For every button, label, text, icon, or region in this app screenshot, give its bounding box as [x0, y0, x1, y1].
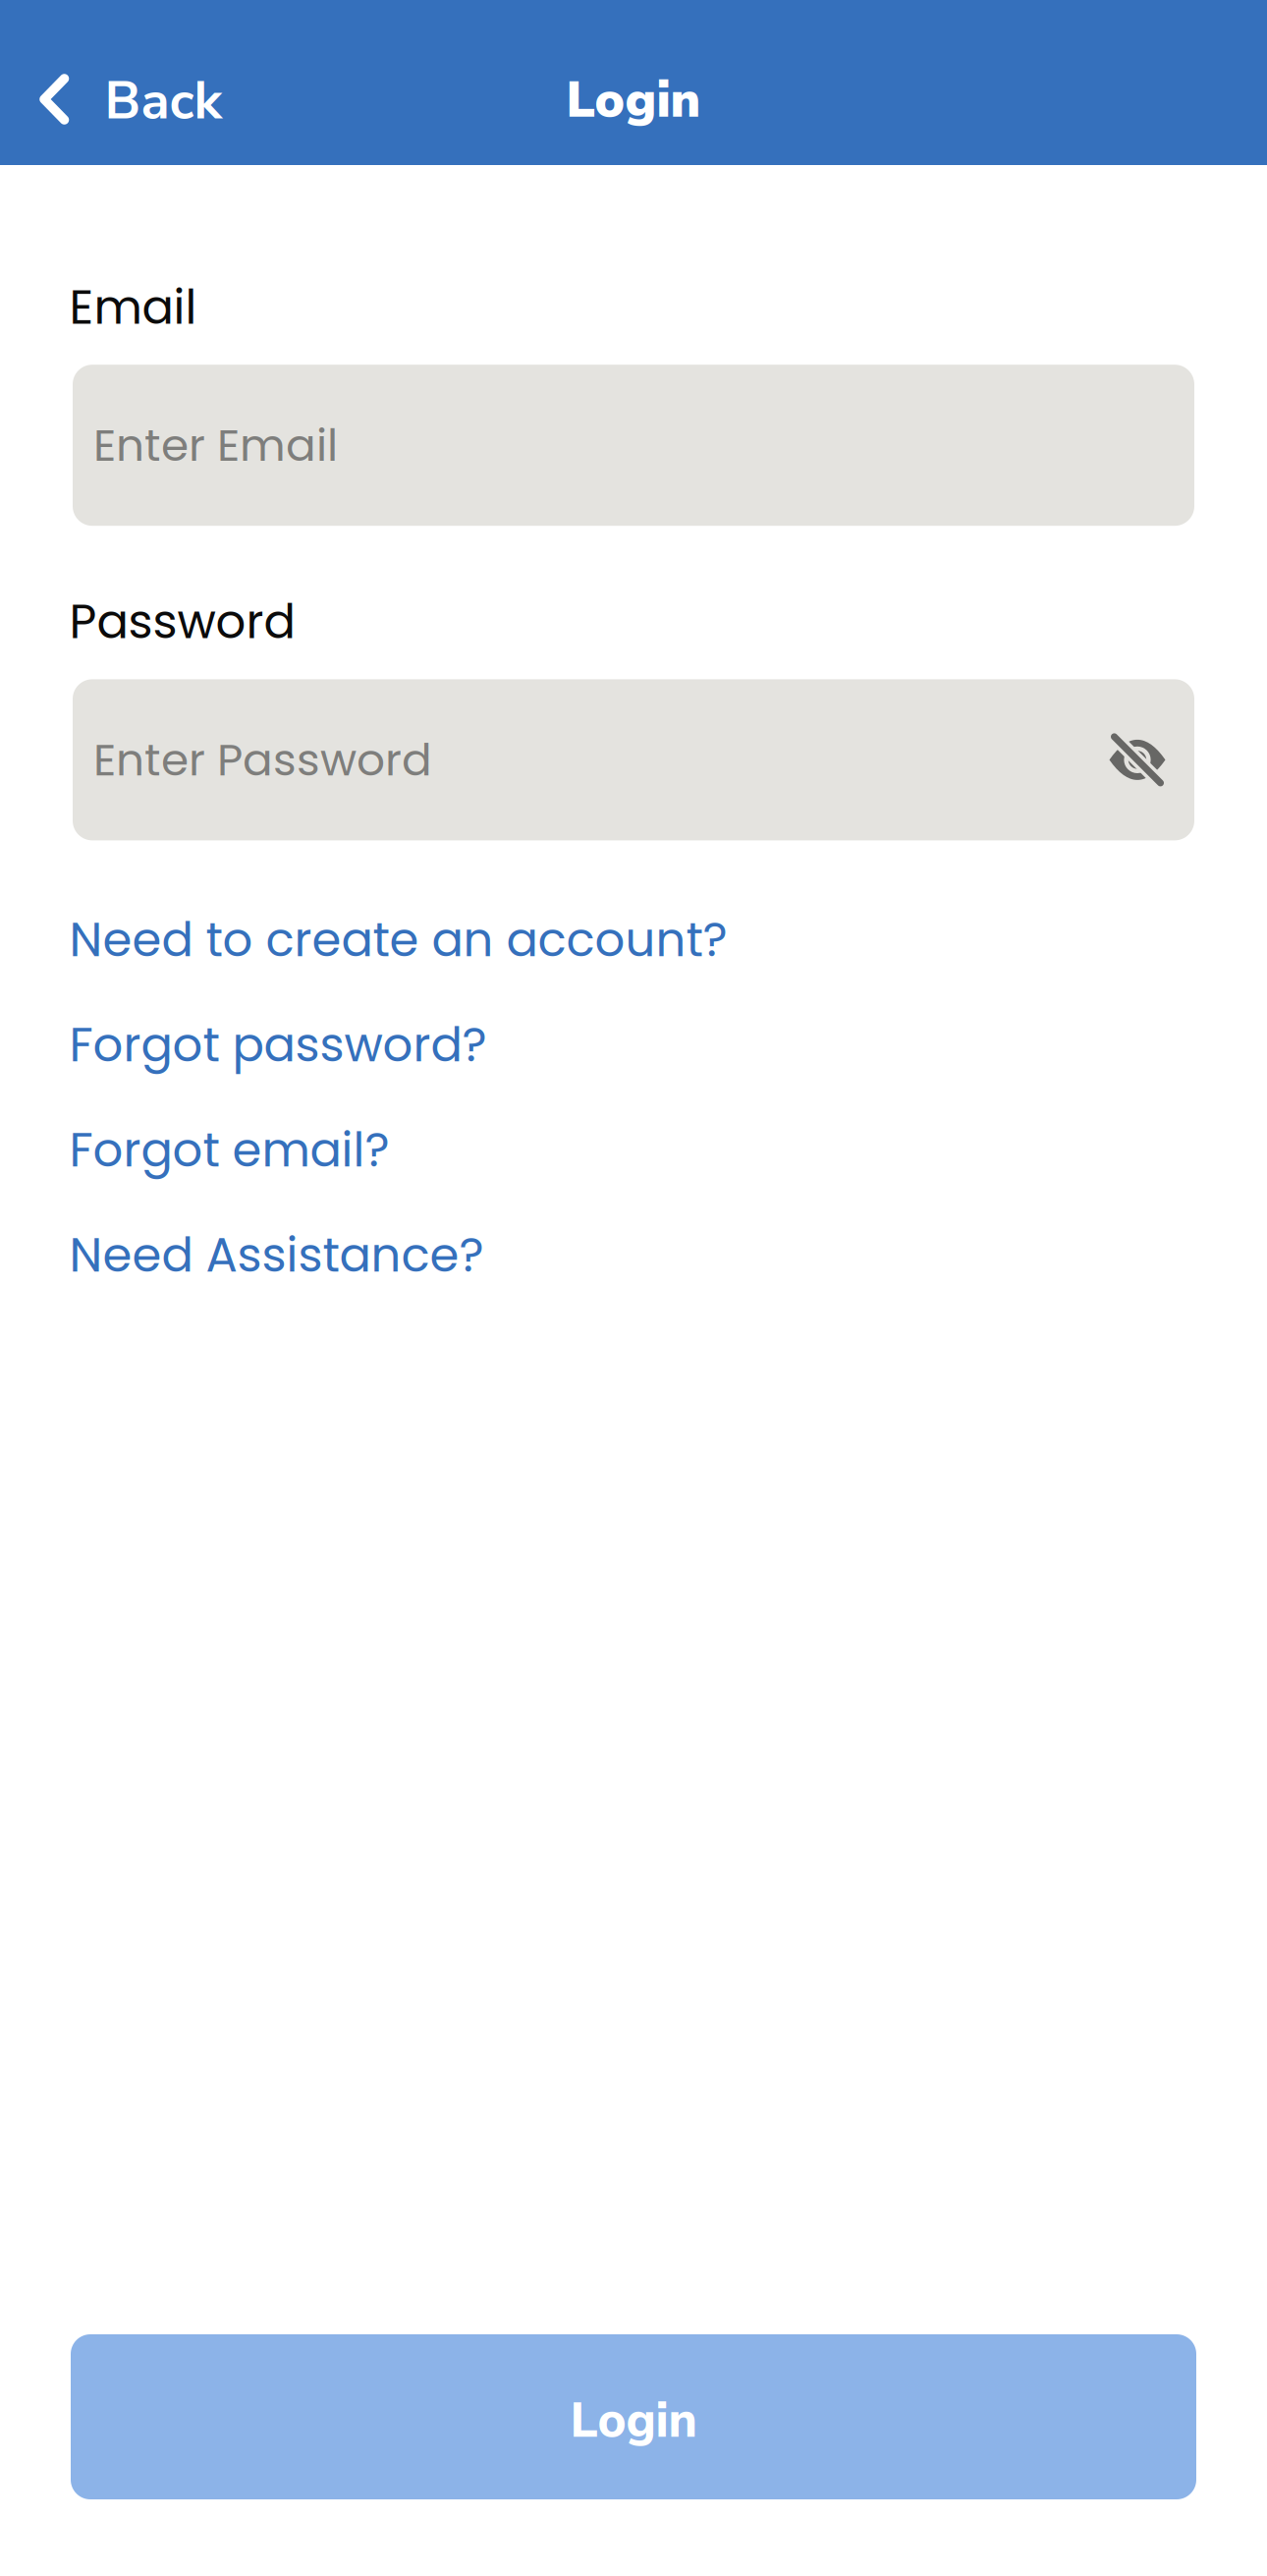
staticText: Login: [566, 66, 701, 134]
staticText: Email: [69, 274, 197, 340]
staticText: Need Assistance?: [69, 1222, 484, 1288]
staticText: Enter Email: [93, 414, 338, 476]
staticText: Forgot password?: [69, 1012, 487, 1078]
button[interactable]: Enter Password: [73, 679, 1086, 840]
button[interactable]: Need Assistance?: [0, 1220, 1267, 1290]
staticText: Back: [105, 65, 222, 137]
staticText: Login: [570, 2388, 697, 2454]
button[interactable]: Enter Email: [73, 365, 1194, 526]
staticText: Forgot email?: [69, 1117, 389, 1183]
button[interactable]: Need to create an account?: [0, 904, 1267, 975]
button[interactable]: Forgot password?: [0, 1009, 1267, 1080]
staticText: Password: [69, 589, 295, 655]
button[interactable]: Login: [71, 2334, 1196, 2499]
staticText: Need to create an account?: [69, 907, 727, 973]
button[interactable]: Back: [0, 0, 242, 165]
button[interactable]: Forgot email?: [0, 1114, 1267, 1185]
button[interactable]: Show password: [1086, 679, 1194, 840]
staticText: Enter Password: [93, 729, 432, 791]
